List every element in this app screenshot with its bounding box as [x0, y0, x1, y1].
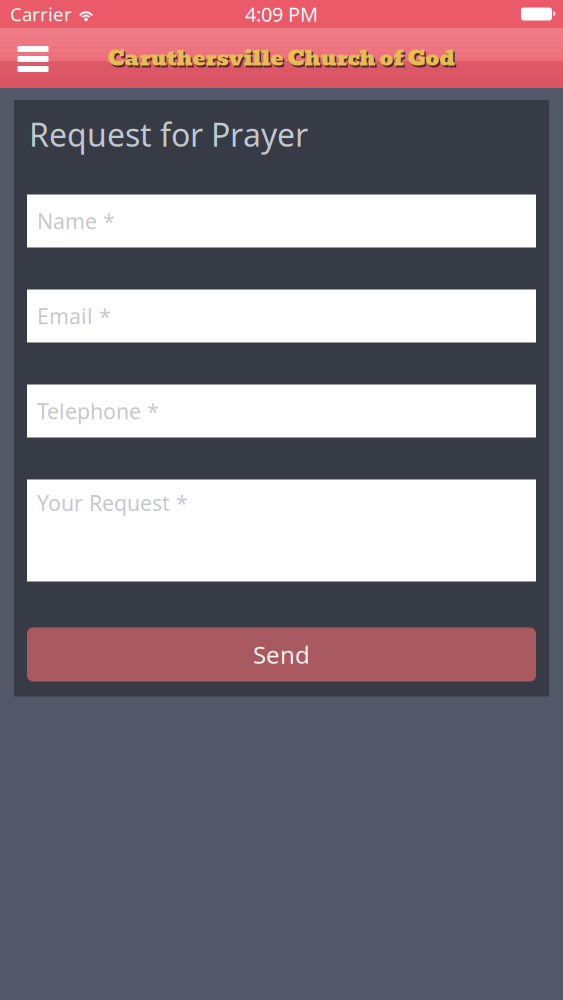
- staticText: Caruthersville Church of God: [107, 41, 455, 75]
- staticText: Caruthersville Church of God: [109, 43, 457, 77]
- staticText: 4:09 PM: [245, 1, 318, 27]
- button[interactable]: Send: [27, 627, 536, 681]
- button[interactable]: Name *: [27, 194, 536, 247]
- staticText: Request for Prayer: [29, 113, 308, 155]
- button[interactable]: Your Request *: [27, 479, 536, 581]
- button[interactable]: Telephone *: [27, 384, 536, 437]
- staticText: Email *: [37, 302, 111, 330]
- staticText: Name *: [37, 207, 115, 235]
- staticText: Send: [253, 639, 310, 670]
- staticText: Telephone *: [37, 397, 159, 425]
- button[interactable]: Email *: [27, 289, 536, 342]
- staticText: Carrier: [10, 2, 72, 26]
- button[interactable]: Menu: [0, 28, 66, 88]
- staticText: Your Request *: [37, 488, 188, 517]
